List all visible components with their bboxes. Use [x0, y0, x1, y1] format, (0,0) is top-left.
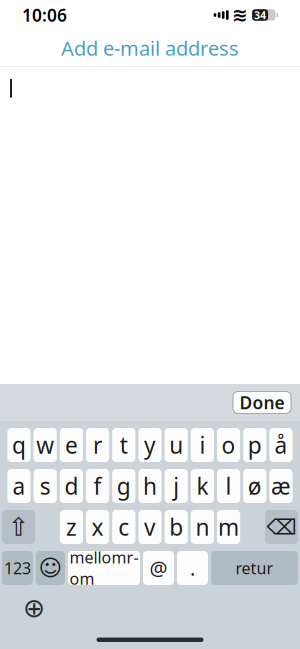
button[interactable]: g	[112, 469, 135, 503]
staticText: t	[120, 430, 128, 460]
button[interactable]: z	[60, 510, 83, 544]
button[interactable]: h	[138, 469, 162, 503]
button[interactable]: x	[86, 510, 109, 544]
staticText: s	[40, 471, 51, 501]
button[interactable]: j	[165, 469, 188, 503]
staticText: æ	[271, 471, 291, 501]
button[interactable]: ø	[243, 469, 266, 503]
button[interactable]: v	[138, 510, 162, 544]
button[interactable]: o	[217, 428, 240, 462]
staticText: o	[222, 430, 236, 460]
button[interactable]: æ	[269, 469, 293, 503]
button[interactable]: .	[177, 551, 208, 585]
staticText: l	[226, 471, 232, 501]
button[interactable]: q	[7, 428, 31, 462]
staticText: a	[12, 471, 25, 501]
button[interactable]: u	[165, 428, 188, 462]
staticText: 10:06	[22, 3, 67, 26]
button[interactable]: Next keyboard	[20, 594, 48, 622]
button[interactable]: n	[191, 510, 214, 544]
staticText: Add e-mail address	[61, 35, 239, 61]
staticText: z	[66, 512, 77, 542]
button[interactable]: w	[34, 428, 57, 462]
staticText: ⊕	[23, 593, 45, 623]
button[interactable]: t	[112, 428, 135, 462]
button[interactable]: b	[165, 510, 188, 544]
staticText: .	[190, 555, 195, 581]
button[interactable]: Emoji	[36, 551, 65, 585]
staticText: å	[274, 430, 287, 460]
staticText: c	[118, 512, 129, 542]
button[interactable]: mellomrom	[68, 551, 140, 585]
button[interactable]: Delete	[265, 510, 298, 544]
button[interactable]: @	[143, 551, 174, 585]
staticText: w	[36, 430, 54, 460]
staticText: Done	[239, 391, 284, 414]
staticText: @	[149, 555, 167, 581]
button[interactable]: Numbers	[2, 551, 33, 585]
staticText: g	[117, 471, 131, 501]
staticText: v	[144, 512, 156, 542]
staticText: i	[199, 430, 205, 460]
button[interactable]: y	[138, 428, 162, 462]
staticText: k	[196, 471, 208, 501]
button[interactable]: a	[7, 469, 31, 503]
staticText: ⌫	[266, 515, 296, 539]
staticText: retur	[235, 557, 273, 579]
staticText: ☺	[38, 555, 62, 581]
staticText: r	[93, 430, 102, 460]
button[interactable]: e	[60, 428, 83, 462]
staticText: f	[94, 471, 102, 501]
button[interactable]: k	[191, 469, 214, 503]
staticText: ø	[248, 471, 262, 501]
staticText: ≋	[232, 4, 248, 26]
button[interactable]: s	[34, 469, 57, 503]
staticText: b	[169, 512, 183, 542]
button[interactable]: d	[60, 469, 83, 503]
button[interactable]: r	[86, 428, 109, 462]
staticText: mellomrom	[69, 547, 138, 589]
staticText: n	[195, 512, 209, 542]
button[interactable]: c	[112, 510, 135, 544]
staticText: x	[92, 512, 104, 542]
staticText: d	[64, 471, 78, 501]
button[interactable]: l	[217, 469, 240, 503]
button[interactable]: m	[217, 510, 240, 544]
staticText: j	[173, 471, 179, 501]
staticText: q	[12, 430, 26, 460]
button[interactable]: retur	[211, 551, 298, 585]
button[interactable]: p	[243, 428, 266, 462]
button[interactable]: Add e-mail address	[0, 30, 300, 66]
staticText: u	[169, 430, 183, 460]
button[interactable]: Done	[233, 391, 291, 413]
staticText: p	[248, 430, 262, 460]
button[interactable]: å	[269, 428, 293, 462]
staticText: 34	[254, 8, 266, 22]
button[interactable]: Shift	[2, 510, 35, 544]
staticText: h	[143, 471, 157, 501]
button[interactable]: i	[191, 428, 214, 462]
staticText: e	[65, 430, 78, 460]
staticText: 123	[4, 557, 31, 579]
staticText: m	[218, 512, 239, 542]
button[interactable]: f	[86, 469, 109, 503]
staticText: y	[144, 430, 156, 460]
staticText: ⇧	[8, 513, 29, 541]
